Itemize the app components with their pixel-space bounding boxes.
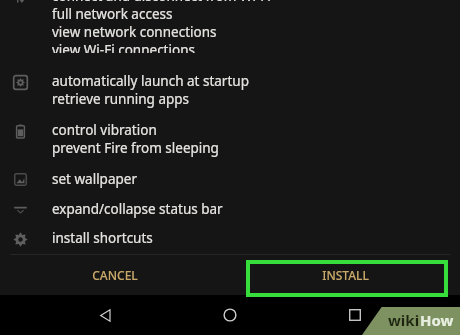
- button[interactable]: Install shortcuts permission: [0, 229, 460, 248]
- other: Vibration and sleep permissions: [12, 123, 40, 140]
- button[interactable]: Recent apps: [335, 295, 375, 335]
- staticText: How: [420, 310, 454, 330]
- button[interactable]: Status bar permission: [0, 200, 460, 218]
- other: Wi-Fi permissions: [12, 0, 40, 4]
- staticText: full network access: [52, 5, 173, 23]
- other: Wallpaper permission: [12, 171, 40, 188]
- staticText: INSTALL: [322, 267, 369, 283]
- other: Startup and running apps permissions: [12, 74, 40, 91]
- other: Status bar permission: [12, 201, 40, 218]
- staticText: expand/collapse status bar: [52, 200, 223, 218]
- staticText: control vibration: [52, 121, 157, 139]
- button[interactable]: Vibration and sleep permissions: [0, 121, 460, 157]
- button[interactable]: Wallpaper permission: [0, 170, 460, 188]
- staticText: automatically launch at startup: [52, 72, 249, 90]
- button[interactable]: CANCEL: [0, 255, 230, 295]
- button[interactable]: Startup and running apps permissions: [0, 72, 460, 108]
- button[interactable]: INSTALL: [230, 255, 460, 295]
- staticText: CANCEL: [92, 267, 138, 283]
- staticText: wiki: [388, 310, 420, 330]
- other: Install shortcuts permission: [12, 231, 40, 248]
- staticText: view Wi-Fi connections: [52, 41, 195, 53]
- staticText: install shortcuts: [52, 229, 153, 247]
- button[interactable]: Home: [210, 295, 250, 335]
- button[interactable]: Back: [85, 295, 125, 335]
- staticText: retrieve running apps: [52, 90, 190, 108]
- staticText: view network connections: [52, 23, 217, 41]
- button[interactable]: Wi-Fi permissions: [0, 0, 460, 66]
- staticText: prevent Fire from sleeping: [52, 139, 219, 157]
- staticText: set wallpaper: [52, 170, 137, 188]
- staticText: connect and disconnect from Wi-Fi: [52, 0, 271, 5]
